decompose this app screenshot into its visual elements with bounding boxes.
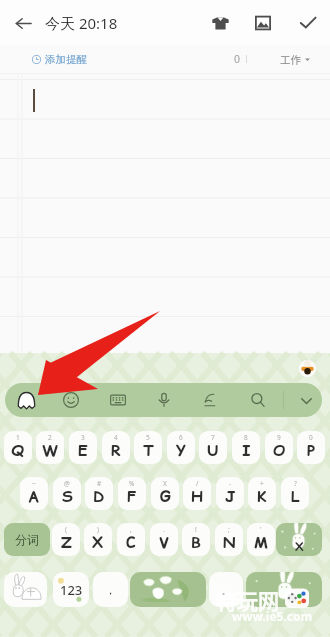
- staticText: 。: [221, 583, 232, 597]
- button[interactable]: 2: [36, 431, 64, 464]
- button[interactable]: ?: [281, 477, 309, 510]
- button[interactable]: Sogou: [11, 383, 41, 417]
- staticText: ,: [130, 525, 132, 534]
- button[interactable]: @: [53, 477, 81, 510]
- button[interactable]: -: [216, 477, 244, 510]
- staticText: /: [196, 479, 199, 488]
- staticText: #: [97, 479, 102, 488]
- button[interactable]: X: [151, 477, 179, 510]
- button[interactable]: Comma: [93, 572, 128, 607]
- staticText: 分词: [15, 532, 39, 547]
- button[interactable]: ;: [215, 523, 243, 556]
- staticText: 6: [179, 433, 183, 442]
- button[interactable]: Enter: [246, 572, 322, 607]
- staticText: G: [160, 486, 171, 508]
- button[interactable]: Keyboard layout: [103, 383, 133, 417]
- button[interactable]: Backspace: [276, 523, 322, 556]
- button[interactable]: ': [247, 523, 275, 556]
- staticText: 123: [60, 581, 83, 599]
- staticText: 2: [48, 433, 52, 442]
- staticText: Z: [61, 532, 72, 554]
- staticText: 4: [114, 433, 118, 442]
- staticText: N: [223, 532, 236, 554]
- button[interactable]: #: [85, 477, 113, 510]
- staticText: U: [207, 440, 219, 462]
- button[interactable]: 8: [232, 431, 260, 464]
- staticText: 工作: [280, 52, 301, 67]
- staticText: S: [62, 486, 73, 508]
- staticText: T: [143, 440, 154, 462]
- button[interactable]: 4: [102, 431, 130, 464]
- staticText: H: [191, 486, 203, 508]
- button[interactable]: 3: [69, 431, 97, 464]
- button[interactable]: 工作: [280, 52, 310, 67]
- staticText: J: [225, 486, 236, 508]
- staticText: X: [92, 532, 104, 554]
- staticText: P: [307, 440, 316, 462]
- button[interactable]: Voice input: [149, 383, 179, 417]
- button[interactable]: !: [182, 523, 210, 556]
- staticText: K: [257, 486, 267, 508]
- staticText: 添加提醒: [45, 53, 87, 66]
- staticText: F: [127, 486, 137, 508]
- button[interactable]: 1: [4, 431, 32, 464]
- staticText: M: [254, 532, 268, 554]
- button[interactable]: ,: [117, 523, 145, 556]
- button[interactable]: Handwriting: [195, 383, 225, 417]
- staticText: L: [291, 486, 300, 508]
- staticText: 8: [244, 433, 248, 442]
- staticText: !: [195, 525, 197, 534]
- staticText: I: [242, 440, 251, 462]
- button[interactable]: .: [150, 523, 178, 556]
- button[interactable]: Emoji: [56, 383, 86, 417]
- button[interactable]: 添加提醒: [32, 53, 87, 66]
- button[interactable]: 6: [167, 431, 195, 464]
- button[interactable]: Period: [209, 572, 243, 607]
- staticText: 0: [234, 52, 241, 66]
- button[interactable]: Search: [243, 383, 273, 417]
- staticText: (: [65, 525, 67, 534]
- staticText: www.ie5.com: [232, 608, 313, 624]
- staticText: 9: [277, 433, 281, 442]
- button[interactable]: More: [291, 383, 321, 417]
- button[interactable]: /: [183, 477, 211, 510]
- button[interactable]: ): [84, 523, 112, 556]
- staticText: V: [159, 532, 170, 554]
- button[interactable]: Numbers: [53, 572, 89, 607]
- staticText: ，: [105, 583, 116, 597]
- staticText: R: [111, 440, 121, 462]
- staticText: -: [229, 479, 232, 488]
- staticText: .: [163, 525, 165, 534]
- staticText: 今天 20:18: [45, 13, 118, 33]
- staticText: E: [78, 440, 88, 462]
- button[interactable]: ~: [20, 477, 48, 510]
- button[interactable]: Theme: [205, 8, 235, 38]
- staticText: 3: [81, 433, 85, 442]
- staticText: ;: [228, 525, 230, 534]
- staticText: X: [163, 479, 167, 488]
- button[interactable]: (: [52, 523, 80, 556]
- staticText: 特玩网: [216, 585, 279, 615]
- button[interactable]: 分词: [4, 523, 50, 556]
- button[interactable]: Back: [8, 8, 38, 38]
- button[interactable]: 0: [297, 431, 325, 464]
- button[interactable]: Assistant: [299, 360, 316, 377]
- button[interactable]: 5: [134, 431, 162, 464]
- button[interactable]: +: [248, 477, 276, 510]
- button[interactable]: %: [118, 477, 146, 510]
- staticText: Y: [176, 440, 186, 462]
- staticText: ?: [294, 479, 297, 488]
- staticText: D: [93, 486, 105, 508]
- button[interactable]: Done: [293, 8, 323, 38]
- staticText: X: [295, 538, 304, 555]
- button[interactable]: Space: [130, 572, 206, 607]
- staticText: O: [273, 440, 286, 462]
- button[interactable]: Stickers: [4, 572, 47, 607]
- staticText: 0: [309, 433, 313, 442]
- staticText: C: [126, 532, 136, 554]
- staticText: +: [260, 479, 264, 488]
- staticText: %: [129, 479, 135, 488]
- button[interactable]: Insert image: [248, 8, 278, 38]
- button[interactable]: 7: [199, 431, 227, 464]
- button[interactable]: 9: [265, 431, 293, 464]
